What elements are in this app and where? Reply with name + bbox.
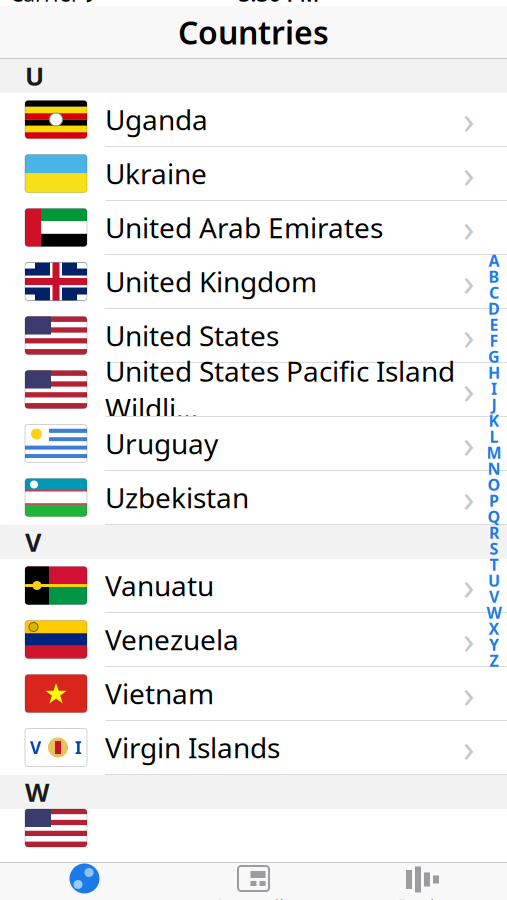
staticText: Uruguay: [105, 425, 218, 462]
button[interactable]: Venezuela: [0, 613, 507, 667]
button[interactable]: Ranks: [338, 863, 507, 900]
staticText: V: [30, 736, 41, 759]
staticText: Carrier: [10, 0, 80, 8]
staticText: S: [489, 538, 498, 559]
button[interactable]: United Arab Emirates: [0, 201, 507, 255]
staticText: United States Pacific Island Wildli…: [105, 352, 455, 427]
staticText: C: [489, 282, 499, 303]
staticText: Q: [487, 506, 500, 527]
staticText: Vietnam: [105, 675, 214, 712]
staticText: ›: [463, 419, 475, 468]
button[interactable]: V: [0, 721, 507, 775]
staticText: ◗: [85, 0, 95, 4]
staticText: ›: [463, 257, 475, 306]
staticText: V: [25, 525, 41, 559]
staticText: Y: [489, 634, 499, 655]
staticText: H: [488, 362, 500, 383]
staticText: Ranks: [398, 894, 447, 900]
staticText: Vanuatu: [105, 567, 214, 604]
staticText: Uganda: [105, 101, 208, 138]
staticText: U: [488, 570, 500, 591]
staticText: M: [486, 442, 501, 463]
staticText: Z: [489, 650, 498, 671]
staticText: ›: [463, 203, 475, 252]
staticText: ›: [463, 615, 475, 664]
staticText: United States: [105, 317, 279, 354]
button[interactable]: ★: [0, 667, 507, 721]
staticText: ›: [463, 561, 475, 610]
button[interactable]: Countries: [0, 863, 169, 900]
button[interactable]: Uzbekistan: [0, 471, 507, 525]
staticText: R: [489, 522, 499, 543]
staticText: Uzbekistan: [105, 479, 249, 516]
staticText: B: [488, 266, 499, 287]
button[interactable]: United Kingdom: [0, 255, 507, 309]
staticText: I: [75, 736, 82, 759]
button[interactable]: Alphabet index: [483, 252, 505, 668]
staticText: A: [488, 250, 499, 271]
button[interactable]: Appendix: [169, 863, 338, 900]
staticText: W: [25, 775, 49, 809]
staticText: United Kingdom: [105, 263, 317, 300]
staticText: G: [488, 346, 500, 367]
staticText: O: [487, 474, 500, 495]
staticText: 3:36 PM: [238, 0, 319, 8]
button[interactable]: Ukraine: [0, 147, 507, 201]
staticText: ›: [463, 95, 475, 144]
staticText: P: [489, 490, 499, 511]
staticText: ›: [463, 669, 475, 718]
staticText: F: [489, 330, 498, 351]
staticText: X: [488, 618, 499, 639]
staticText: Countries: [178, 11, 329, 53]
button[interactable]: United States: [0, 309, 507, 363]
staticText: ›: [463, 723, 475, 772]
button[interactable]: Vanuatu: [0, 559, 507, 613]
staticText: ★: [43, 678, 68, 709]
button[interactable]: Uruguay: [0, 417, 507, 471]
staticText: Venezuela: [105, 621, 239, 658]
staticText: United Arab Emirates: [105, 209, 383, 246]
staticText: V: [489, 586, 499, 607]
staticText: T: [489, 554, 498, 575]
staticText: D: [488, 298, 500, 319]
staticText: Virgin Islands: [105, 729, 280, 766]
staticText: K: [488, 410, 499, 431]
staticText: Appendix: [214, 894, 292, 900]
staticText: E: [489, 314, 498, 335]
button[interactable]: United States Pacific Island Wildli…: [0, 363, 507, 417]
staticText: L: [489, 426, 498, 447]
button[interactable]: Uganda: [0, 93, 507, 147]
staticText: J: [491, 394, 496, 415]
staticText: W: [486, 602, 501, 623]
staticText: ›: [463, 473, 475, 522]
staticText: I: [491, 378, 497, 399]
staticText: ›: [463, 365, 475, 414]
staticText: ›: [463, 149, 475, 198]
staticText: ›: [463, 311, 475, 360]
staticText: Ukraine: [105, 155, 207, 192]
staticText: N: [487, 458, 500, 479]
staticText: U: [25, 59, 44, 93]
